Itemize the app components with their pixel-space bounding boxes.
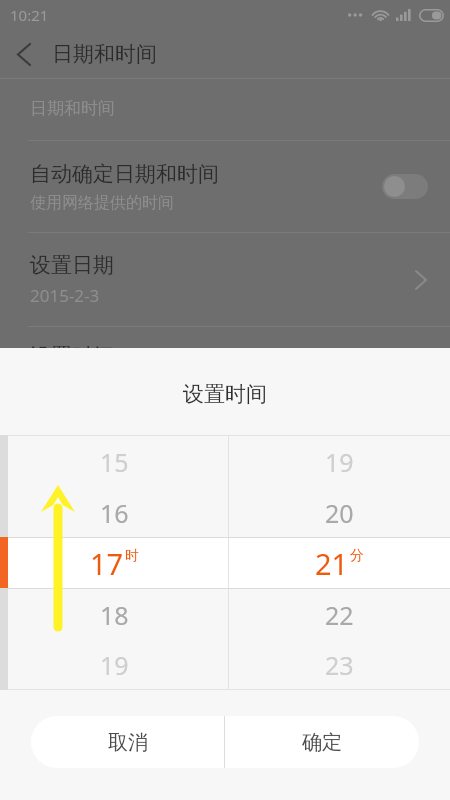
staticText: 日期和时间 [52, 41, 157, 67]
button[interactable]: 取消 [31, 716, 224, 768]
staticText: 21 [315, 544, 349, 583]
button[interactable]: 确定 [225, 716, 419, 768]
button[interactable]: 21 [229, 538, 450, 589]
button[interactable]: 16 [0, 487, 228, 538]
staticText: 设置日期 [30, 252, 114, 278]
button[interactable]: 18 [0, 589, 228, 640]
staticText: 使用网络提供的时间 [30, 193, 174, 213]
staticText: 10:21 [10, 5, 49, 25]
staticText: 23 [325, 648, 354, 682]
staticText: 22 [325, 598, 354, 632]
staticText: 日期和时间 [30, 98, 115, 119]
staticText: 确定 [302, 730, 342, 755]
button[interactable]: 19 [0, 640, 228, 689]
button[interactable]: 20 [229, 487, 450, 538]
button[interactable]: 22 [229, 589, 450, 640]
staticText: 自动确定日期和时间 [30, 161, 219, 187]
button[interactable]: 23 [229, 640, 450, 689]
staticText: 分 [350, 547, 364, 565]
button[interactable]: 17 [0, 538, 228, 589]
button[interactable]: 设置日期 [0, 233, 450, 326]
staticText: 18 [100, 598, 129, 632]
staticText: 设置时间 [30, 343, 114, 369]
button[interactable]: 15 [0, 436, 228, 487]
button[interactable]: 19 [229, 436, 450, 487]
staticText: 15 [100, 445, 129, 479]
button[interactable]: 自动确定日期和时间 [0, 141, 450, 232]
button[interactable]: Back [0, 30, 48, 78]
staticText: 19 [325, 445, 354, 479]
staticText: 20 [325, 496, 354, 530]
staticText: 2015-2-3 [30, 284, 100, 307]
staticText: 取消 [108, 730, 148, 755]
staticText: 17 [90, 544, 124, 583]
staticText: 16 [100, 496, 129, 530]
staticText: 19 [100, 648, 129, 682]
staticText: 设置时间 [0, 381, 450, 407]
staticText: 时 [125, 547, 139, 565]
